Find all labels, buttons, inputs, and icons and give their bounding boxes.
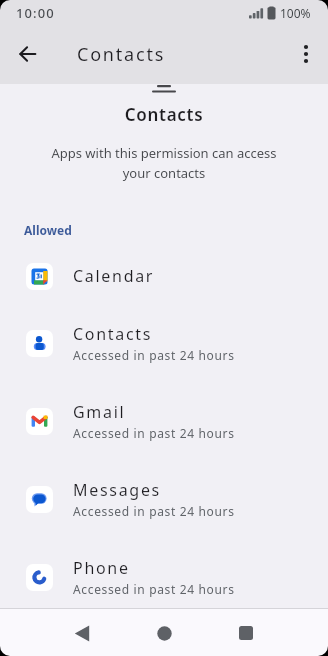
staticText: Accessed in past 24 hours (73, 503, 235, 519)
button[interactable]: Phone (0, 538, 328, 616)
button[interactable]: Gmail (0, 382, 328, 460)
staticText: Apps with this permission can access you… (0, 144, 328, 182)
staticText: 100% (280, 5, 311, 21)
staticText: Gmail (73, 401, 126, 423)
staticText: 10:00 (16, 4, 55, 22)
button[interactable]: Contacts (0, 304, 328, 382)
staticText: Allowed (24, 222, 72, 238)
staticText: Contacts (73, 323, 153, 345)
staticText: Calendar (73, 265, 155, 287)
button[interactable] (284, 32, 328, 76)
button[interactable]: Calendar (0, 248, 328, 304)
staticText: Messages (73, 479, 161, 501)
button[interactable] (62, 613, 102, 653)
staticText: Contacts (77, 42, 166, 67)
button[interactable] (144, 613, 184, 653)
staticText: Accessed in past 24 hours (73, 581, 235, 597)
staticText: Accessed in past 24 hours (73, 347, 235, 363)
staticText: Contacts (0, 103, 328, 126)
button[interactable] (3, 30, 51, 78)
button[interactable] (226, 613, 266, 653)
staticText: Accessed in past 24 hours (73, 425, 235, 441)
button[interactable]: Messages (0, 460, 328, 538)
staticText: Phone (73, 557, 130, 579)
